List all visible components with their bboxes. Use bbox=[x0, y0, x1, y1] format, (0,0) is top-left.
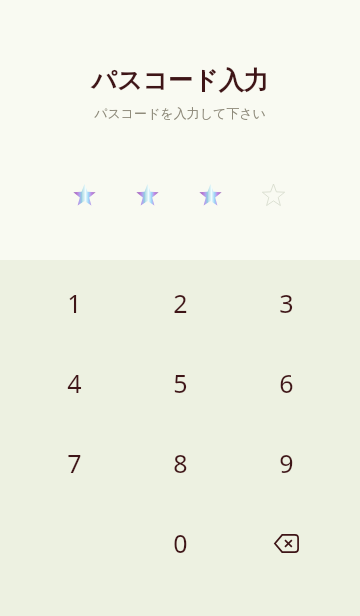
staticText: 4 bbox=[67, 366, 82, 400]
button[interactable]: 0 bbox=[127, 503, 233, 583]
button[interactable]: 4 bbox=[21, 343, 127, 423]
staticText: 8 bbox=[173, 446, 188, 480]
staticText: 7 bbox=[67, 446, 82, 480]
button[interactable]: 8 bbox=[127, 423, 233, 503]
staticText: 5 bbox=[173, 366, 188, 400]
button[interactable]: Backspace bbox=[233, 503, 339, 583]
staticText: 6 bbox=[279, 366, 294, 400]
button[interactable]: 9 bbox=[233, 423, 339, 503]
staticText: 9 bbox=[279, 446, 294, 480]
button[interactable]: 1 bbox=[21, 263, 127, 343]
button[interactable]: 6 bbox=[233, 343, 339, 423]
button[interactable]: 7 bbox=[21, 423, 127, 503]
button[interactable]: 2 bbox=[127, 263, 233, 343]
staticText: 3 bbox=[279, 286, 294, 320]
staticText: 2 bbox=[173, 286, 188, 320]
staticText: 0 bbox=[173, 526, 188, 560]
staticText: パスコードを入力して下さい bbox=[94, 105, 266, 121]
button[interactable]: 3 bbox=[233, 263, 339, 343]
staticText: 1 bbox=[67, 286, 82, 320]
button[interactable]: 5 bbox=[127, 343, 233, 423]
staticText: パスコード入力 bbox=[91, 65, 269, 96]
